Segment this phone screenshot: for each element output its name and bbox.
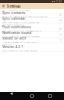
staticText: Sync contacts (2, 11, 25, 15)
button[interactable]: Home (28, 92, 36, 100)
staticText: Vibrate the device for new alerts (2, 41, 37, 44)
staticText: Tap to check for the latest updates (2, 49, 37, 52)
button[interactable]: Back (10, 92, 18, 100)
staticText: Version 4.2.1 (2, 45, 23, 49)
button[interactable]: Push notifications (0, 26, 64, 32)
staticText: Sync calendar (2, 17, 25, 20)
staticText: Push notifications (2, 25, 31, 29)
staticText: ACCOUNTS & SYNC (2, 9, 30, 12)
staticText: 9:41 (56, 0, 63, 3)
staticText: Get alerts when new messages arrive (2, 29, 41, 32)
button[interactable]: Notification sound (0, 32, 64, 37)
staticText: Settings (7, 3, 21, 8)
button[interactable]: Recents (46, 92, 54, 100)
button[interactable]: Version 4.2.1 (0, 46, 64, 52)
staticText: Keep your contacts up to date across dev… (2, 15, 47, 18)
staticText: ABOUT (2, 43, 12, 46)
button[interactable]: Menu (1, 3, 6, 9)
button[interactable]: Sync calendar (0, 17, 64, 23)
button[interactable]: Vibrate on alert (0, 37, 64, 43)
staticText: Vibrate on alert (2, 36, 26, 40)
button[interactable]: Sync contacts (0, 12, 64, 17)
staticText: Notification sound (2, 31, 31, 35)
staticText: NOTIFICATIONS (2, 23, 24, 26)
staticText: Play a sound for incoming messages (2, 35, 39, 38)
staticText: Show your events in the calendar app (2, 21, 39, 24)
